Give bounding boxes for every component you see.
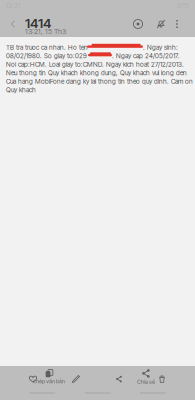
button[interactable]: Delete <box>154 371 170 387</box>
staticText: Quy khach <box>6 86 36 94</box>
button[interactable]: Mute notifications <box>151 13 171 35</box>
staticText: 13:21 <box>6 1 20 10</box>
staticText: . Ngay sinh: <box>143 43 178 51</box>
button[interactable]: Forward <box>111 371 127 387</box>
button[interactable]: chép văn bản <box>31 369 67 385</box>
button[interactable]: View details <box>128 13 148 35</box>
staticText: TB tra truoc ca nhan. Ho ten <box>6 43 88 51</box>
button[interactable]: Favourite <box>25 371 41 387</box>
button[interactable]: Edit <box>68 371 84 387</box>
staticText: Neu thong tin Quy khach khong dung, Quy … <box>6 69 187 77</box>
button[interactable]: Chia sẻ <box>134 369 158 385</box>
staticText: . Ngay cap 24/05/2017. <box>112 52 180 60</box>
staticText: 1414 <box>25 15 51 31</box>
staticText: chép văn bản <box>33 378 65 385</box>
staticText: 08/02/1980. So giay to:029 <box>6 52 87 60</box>
button[interactable]: Back <box>3 13 23 35</box>
staticText: Cua hang MobiFone dang ky lai thong tin … <box>6 77 193 85</box>
staticText: Noi cap:HCM. Loai giay to:CMND. Ngay kic… <box>6 60 184 68</box>
staticText: 87% <box>177 1 189 10</box>
staticText: Chia sẻ <box>137 378 155 385</box>
button[interactable]: More options <box>169 13 185 35</box>
staticText: 13:21, 15 Th3 <box>25 27 66 36</box>
